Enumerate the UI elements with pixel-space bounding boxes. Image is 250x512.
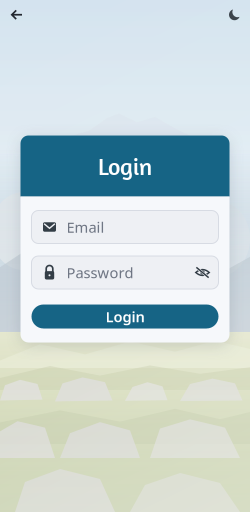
- button[interactable]: Back: [1, 1, 32, 28]
- button[interactable]: Login: [31, 304, 218, 328]
- staticText: Login: [105, 307, 144, 326]
- staticText: Login: [98, 151, 152, 181]
- button[interactable]: Toggle dark mode: [220, 1, 249, 28]
- staticText: Password: [66, 263, 133, 282]
- staticText: Email: [66, 217, 104, 237]
